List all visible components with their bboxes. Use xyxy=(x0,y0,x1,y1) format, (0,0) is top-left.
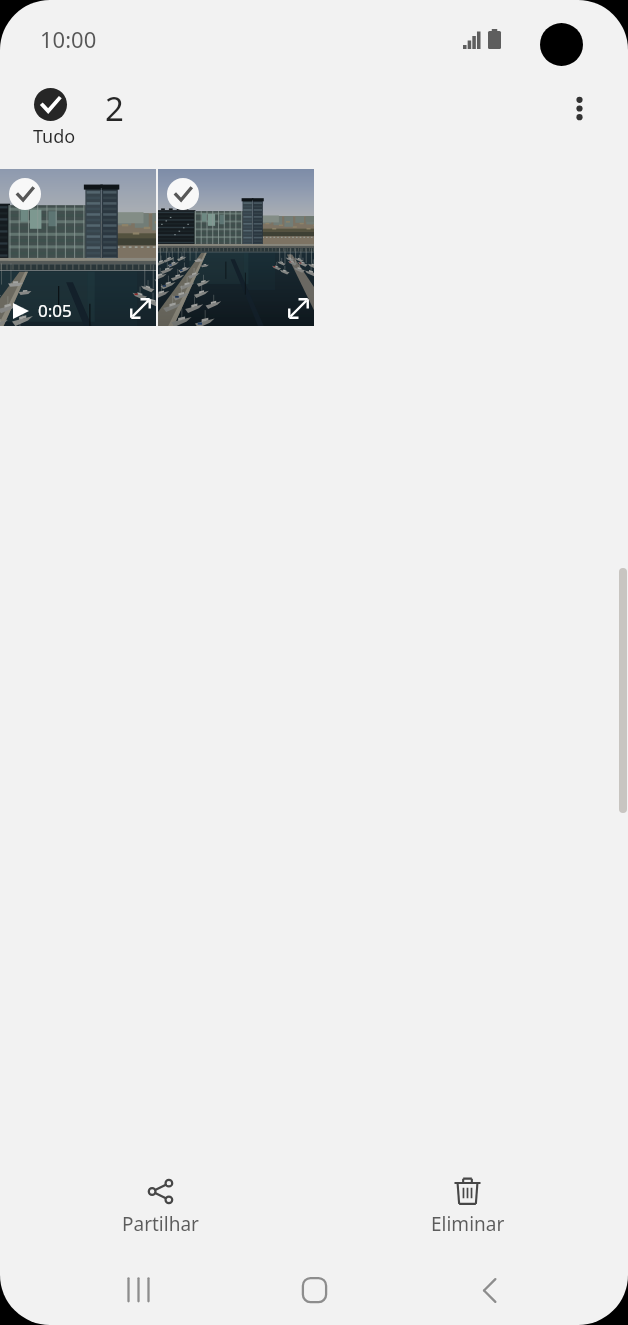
button[interactable]: Home xyxy=(276,1252,352,1325)
staticText: Eliminar xyxy=(431,1211,505,1237)
button[interactable] xyxy=(158,169,314,326)
staticText: 10:00 xyxy=(40,24,97,54)
staticText: Partilhar xyxy=(122,1211,199,1237)
button[interactable]: 0:05 xyxy=(0,169,156,326)
button[interactable]: More options xyxy=(551,80,607,136)
button[interactable]: Back xyxy=(452,1252,528,1325)
button[interactable]: Tudo xyxy=(29,80,72,149)
button[interactable]: Partilhar xyxy=(46,1134,275,1237)
button[interactable]: Eliminar xyxy=(353,1134,582,1237)
staticText: Tudo xyxy=(33,124,76,149)
staticText: 2 xyxy=(105,86,124,131)
button[interactable]: Recent apps xyxy=(100,1252,176,1325)
staticText: 0:05 xyxy=(38,299,72,322)
